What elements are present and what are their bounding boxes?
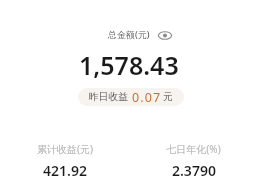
staticText: 1,578.43: [79, 48, 179, 82]
button[interactable]: 七日年化(%): [129, 142, 258, 180]
staticText: 元: [163, 91, 173, 103]
button[interactable]: 昨日收益: [78, 88, 184, 106]
button[interactable]: 累计收益(元): [0, 142, 129, 180]
staticText: 累计收益(元): [37, 142, 93, 156]
staticText: 昨日收益: [89, 91, 129, 103]
staticText: 2.3790: [172, 161, 216, 180]
staticText: 421.92: [43, 161, 87, 180]
staticText: 0.07: [132, 89, 162, 106]
staticText: 总金额(元): [108, 28, 150, 40]
button[interactable]: Toggle amount visibility: [154, 26, 176, 44]
staticText: 七日年化(%): [166, 142, 221, 156]
